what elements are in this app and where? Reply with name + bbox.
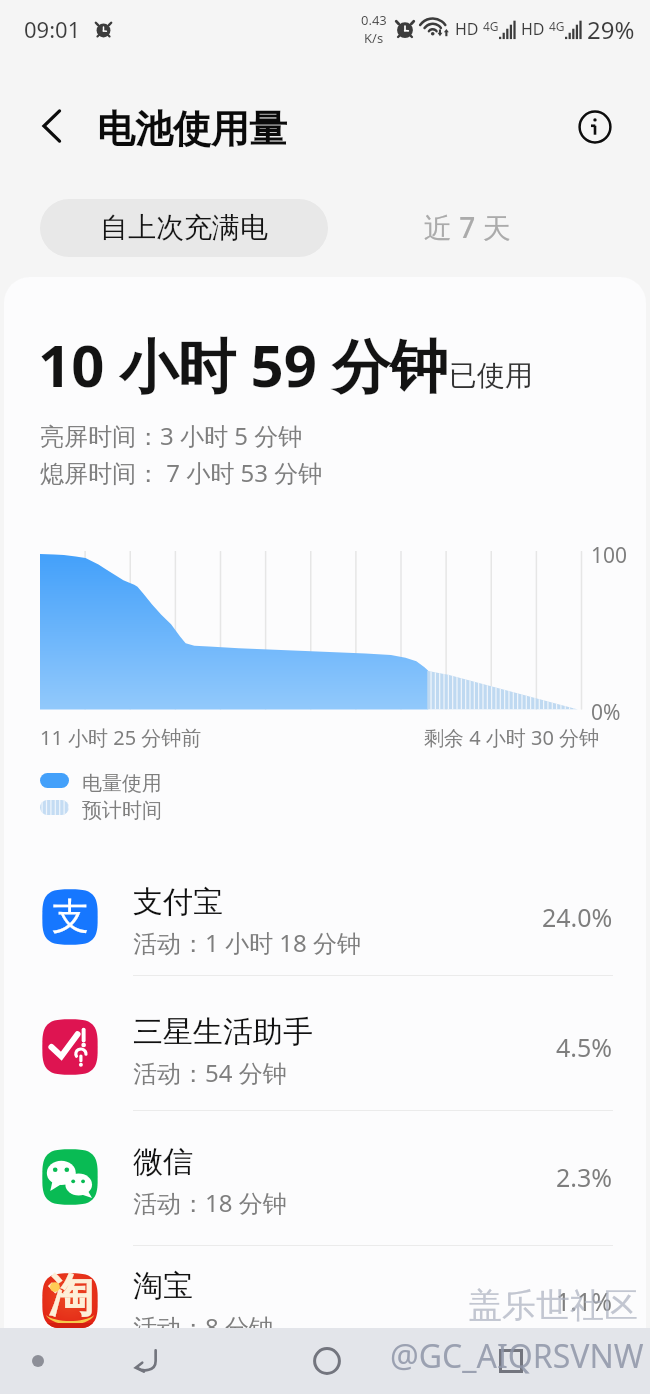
- staticText: 4G: [483, 18, 499, 34]
- staticText: 自上次充满电: [100, 210, 268, 245]
- staticText: 三星生活助手: [133, 1013, 313, 1051]
- button[interactable]: 微信: [0, 1134, 650, 1220]
- button[interactable]: Back: [26, 100, 78, 152]
- button[interactable]: 自上次充满电: [40, 199, 328, 257]
- staticText: 淘宝: [133, 1267, 193, 1305]
- staticText: 预计时间: [82, 798, 162, 823]
- staticText: 29%: [587, 13, 635, 46]
- button[interactable]: 淘: [0, 1258, 650, 1344]
- staticText: 近 7 天: [424, 208, 511, 246]
- staticText: 盖乐世社区: [468, 1284, 638, 1327]
- staticText: 支付宝: [133, 883, 223, 921]
- staticText: 2.3%: [556, 1160, 613, 1194]
- staticText: 熄屏时间： 7 小时 53 分钟: [40, 456, 323, 489]
- staticText: 支: [52, 893, 89, 940]
- staticText: 活动：8 分钟: [133, 1310, 273, 1343]
- staticText: 活动：18 分钟: [133, 1186, 287, 1219]
- button[interactable]: 三星生活助手: [0, 1004, 650, 1090]
- staticText: 剩余 4 小时 30 分钟: [424, 724, 600, 751]
- staticText: 已使用: [449, 358, 533, 393]
- staticText: 微信: [133, 1143, 193, 1181]
- staticText: 10 小时 59 分钟: [38, 325, 448, 404]
- staticText: 淘: [48, 1268, 93, 1325]
- staticText: 0.43: [361, 11, 387, 29]
- button[interactable]: 近 7 天: [410, 199, 525, 257]
- staticText: @GC_AIQRSVNW: [390, 1334, 644, 1378]
- staticText: 电池使用量: [97, 105, 287, 153]
- button[interactable]: Recents: [484, 1334, 538, 1388]
- staticText: 09:01: [24, 14, 81, 44]
- button[interactable]: Home: [300, 1334, 354, 1388]
- staticText: HD: [521, 18, 545, 40]
- button[interactable]: Information: [575, 107, 615, 147]
- staticText: 4.5%: [556, 1030, 613, 1064]
- staticText: 亮屏时间：3 小时 5 分钟: [40, 419, 303, 452]
- staticText: K/s: [364, 29, 384, 47]
- staticText: 100: [591, 541, 628, 570]
- staticText: 活动：54 分钟: [133, 1056, 287, 1089]
- staticText: 0%: [591, 698, 621, 727]
- button[interactable]: 支: [0, 874, 650, 960]
- staticText: 电量使用: [82, 771, 162, 796]
- staticText: 11 小时 25 分钟前: [40, 724, 202, 751]
- staticText: 1.1%: [556, 1284, 613, 1318]
- staticText: 活动：1 小时 18 分钟: [133, 926, 361, 959]
- staticText: 4G: [549, 18, 565, 34]
- button[interactable]: Menu: [11, 1334, 65, 1388]
- staticText: HD: [455, 18, 479, 40]
- button[interactable]: Back: [118, 1334, 172, 1388]
- staticText: 24.0%: [542, 900, 613, 934]
